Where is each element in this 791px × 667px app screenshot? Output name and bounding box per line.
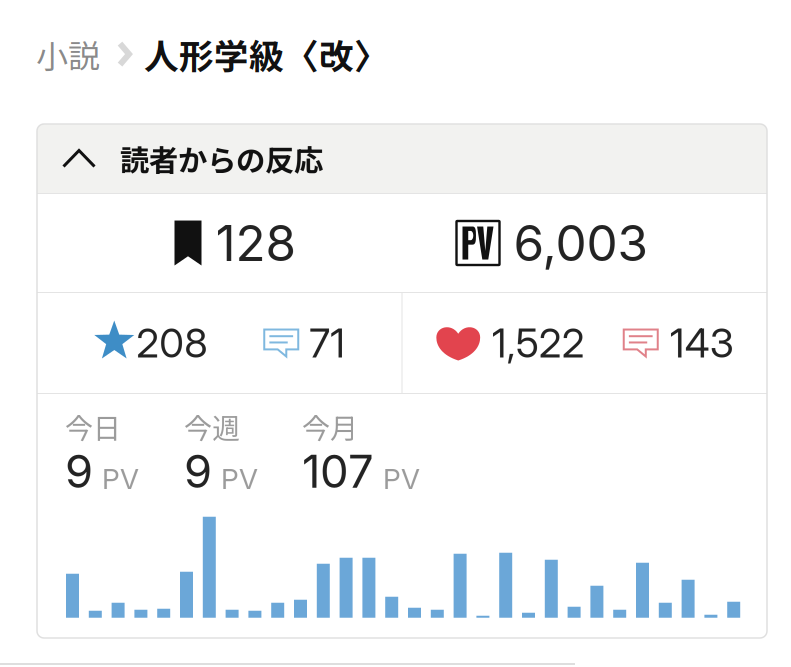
staticText: 208 — [136, 319, 207, 367]
staticText: PV — [383, 462, 420, 496]
staticText: 人形学級〈改〉 — [144, 29, 389, 79]
staticText: PV — [221, 462, 258, 496]
staticText: 読者からの反応 — [120, 137, 323, 180]
staticText: 6,003 — [513, 213, 647, 273]
staticText: 9 — [184, 444, 212, 499]
staticText: 今週 — [184, 409, 240, 444]
staticText: PV — [102, 462, 139, 496]
button[interactable]: 読者からの反応 — [37, 124, 767, 193]
staticText: 107 — [302, 444, 374, 499]
staticText: 1,522 — [492, 319, 585, 367]
staticText: 71 — [309, 319, 345, 367]
staticText: 128 — [215, 213, 296, 273]
staticText: 小説 — [36, 31, 100, 77]
staticText: 9 — [65, 444, 93, 499]
staticText: 今日 — [65, 409, 121, 444]
button[interactable]: 小説 — [36, 31, 100, 77]
staticText: 今月 — [302, 409, 358, 444]
staticText: 143 — [670, 319, 734, 367]
